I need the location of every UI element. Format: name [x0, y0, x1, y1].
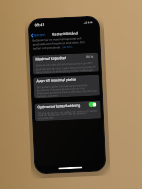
button[interactable]: Optimerad batteriladdning växla: [88, 102, 96, 107]
staticText: 86 %: [86, 55, 94, 59]
staticText: Ditt batteri stöder normal toppresterand…: [36, 83, 97, 97]
staticText: Batteritillstånd: [52, 30, 78, 37]
button[interactable]: Maximal kapacitet: [32, 52, 98, 62]
staticText: Maximal kapacitet: [35, 55, 66, 61]
staticText: Även till maximal ytelse: [36, 77, 76, 83]
staticText: iPhone lär sig hur du laddar din enhet o…: [38, 109, 98, 120]
staticText: Optimerad batteriladdning: [37, 102, 81, 109]
button[interactable]: Optimerad batteriladdning: [34, 100, 101, 110]
button[interactable]: Batteri: [29, 31, 48, 39]
staticText: Detta är ett mått på batterikapaciteten …: [35, 61, 96, 73]
button[interactable]: Läs mer...: [62, 45, 74, 49]
staticText: 09:41: [35, 22, 45, 27]
staticText: batteri och prestanda.: [33, 45, 62, 50]
staticText: Batteriet har en maximal kapacitet och: [32, 36, 81, 42]
staticText: Batteri: [34, 32, 46, 37]
staticText: prestanda som försämras med tiden. Om: [33, 40, 86, 46]
